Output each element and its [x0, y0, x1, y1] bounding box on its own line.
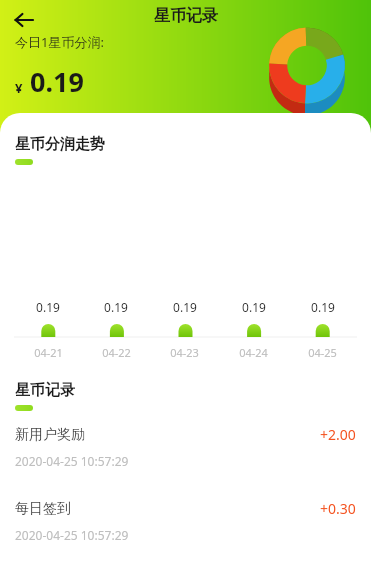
staticText: ¥	[15, 79, 23, 97]
staticText: 每日签到	[15, 500, 320, 518]
staticText: 0.19	[242, 299, 266, 315]
button[interactable]: 新用户奖励	[0, 425, 371, 469]
staticText: +0.30	[320, 499, 356, 518]
staticText: +2.00	[320, 425, 356, 444]
staticText: 2020-04-25 10:57:29	[15, 453, 129, 469]
staticText: 04-22	[102, 345, 131, 360]
button[interactable]: 每日签到	[0, 499, 371, 543]
staticText: 今日1星币分润:	[15, 33, 104, 51]
staticText: 04-21	[34, 345, 63, 360]
staticText: 0.19	[36, 299, 60, 315]
staticText: 04-24	[239, 345, 268, 360]
staticText: 0.19	[173, 299, 197, 315]
staticText: 04-25	[308, 345, 337, 360]
button[interactable]: Back	[6, 2, 42, 38]
staticText: 2020-04-25 10:57:29	[15, 527, 129, 543]
staticText: 0.19	[311, 299, 335, 315]
staticText: 星币分润走势	[15, 135, 105, 154]
staticText: 新用户奖励	[15, 426, 320, 444]
staticText: 星币记录	[154, 6, 218, 26]
staticText: 04-23	[170, 345, 199, 360]
staticText: 0.19	[30, 63, 84, 100]
staticText: 星币记录	[15, 381, 75, 400]
staticText: 0.19	[104, 299, 128, 315]
